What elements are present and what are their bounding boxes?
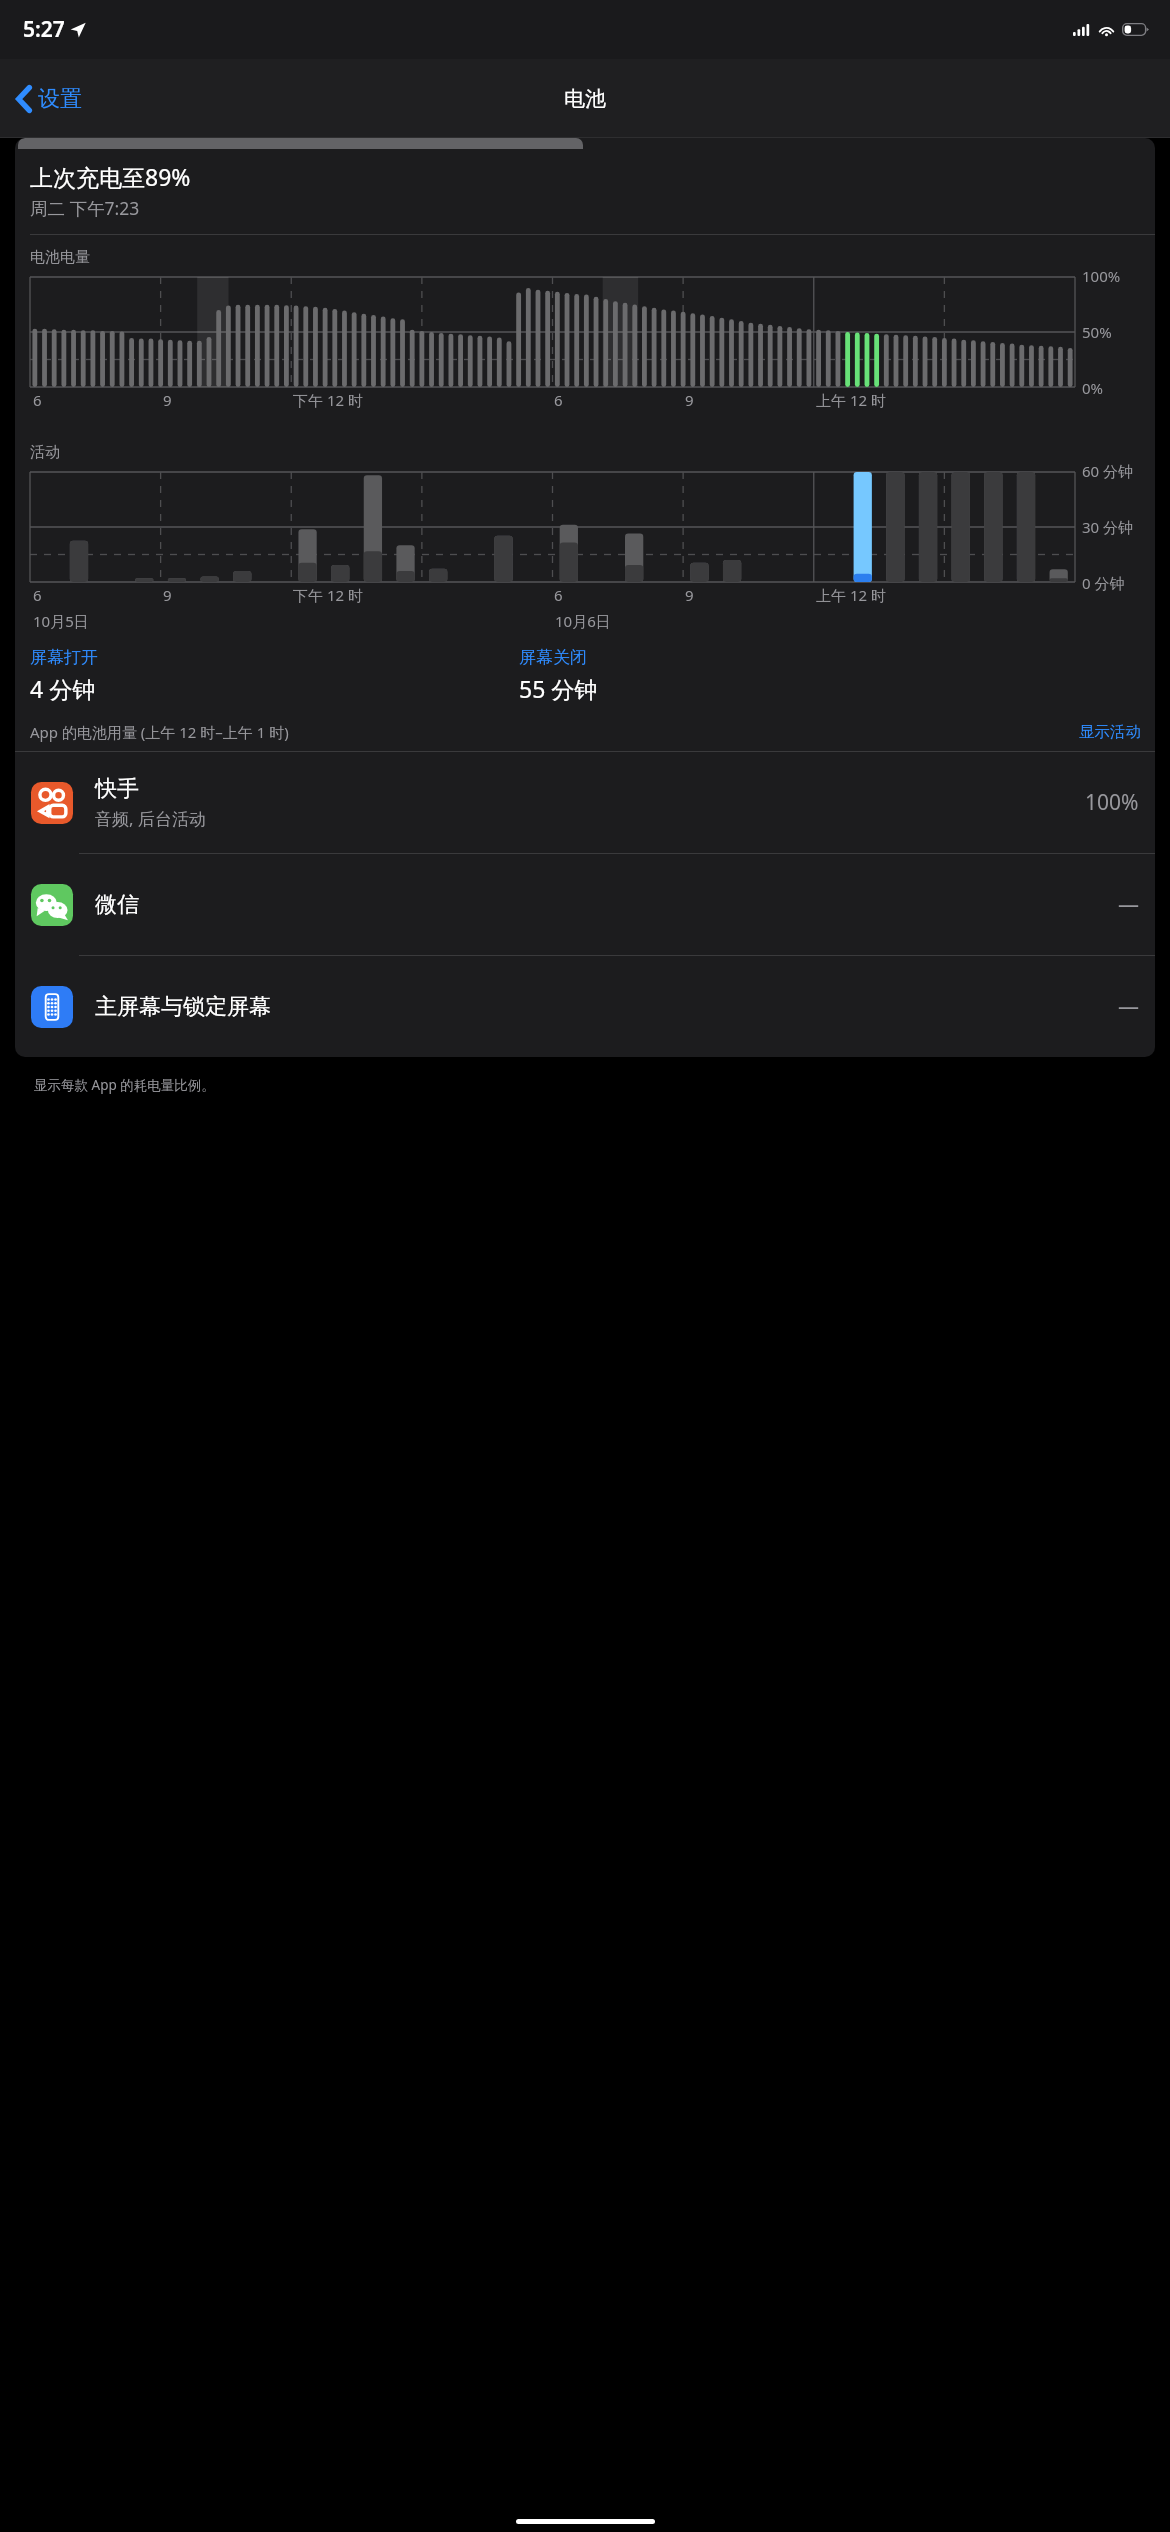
staticText: 10月5日 — [33, 611, 89, 631]
staticText: 50% — [1082, 322, 1112, 342]
staticText: 屏幕打开 — [30, 647, 98, 668]
staticText: 55 分钟 — [519, 673, 598, 704]
staticText: 微信 — [95, 891, 139, 919]
button[interactable] — [18, 138, 583, 149]
button[interactable]: 快手 — [15, 752, 1155, 853]
staticText: 显示每款 App 的耗电量比例。 — [34, 1076, 215, 1094]
staticText: 60 分钟 — [1082, 461, 1134, 481]
staticText: 下午 12 时 — [293, 585, 363, 605]
button[interactable]: 屏幕打开 — [30, 647, 519, 704]
staticText: 6 — [33, 390, 42, 410]
staticText: 9 — [685, 390, 694, 410]
staticText: 30 分钟 — [1082, 517, 1134, 537]
staticText: 下午 12 时 — [293, 390, 363, 410]
button[interactable]: 微信 — [15, 854, 1155, 955]
staticText: 主屏幕与锁定屏幕 — [95, 993, 271, 1021]
staticText: 电池电量 — [30, 248, 90, 267]
staticText: 4 分钟 — [30, 673, 96, 704]
staticText: 设置 — [38, 85, 82, 113]
staticText: 9 — [163, 390, 172, 410]
staticText: — — [1118, 890, 1139, 919]
staticText: 9 — [685, 585, 694, 605]
staticText: 周二 下午7:23 — [30, 196, 140, 220]
button[interactable]: 显示活动 — [1079, 722, 1141, 742]
staticText: 100% — [1085, 788, 1139, 817]
staticText: — — [1118, 992, 1139, 1021]
staticText: 9 — [163, 585, 172, 605]
staticText: 音频, 后台活动 — [95, 807, 206, 830]
staticText: 显示活动 — [1079, 722, 1141, 742]
button[interactable]: 屏幕关闭 — [519, 647, 1155, 704]
staticText: 上次充电至89% — [30, 161, 191, 192]
staticText: 活动 — [30, 443, 60, 462]
button[interactable]: 主屏幕与锁定屏幕 — [15, 956, 1155, 1057]
staticText: 上午 12 时 — [816, 585, 886, 605]
staticText: 0 分钟 — [1082, 573, 1125, 593]
staticText: 100% — [1082, 266, 1121, 286]
staticText: 6 — [33, 585, 42, 605]
staticText: 0% — [1082, 378, 1104, 398]
staticText: 上午 12 时 — [816, 390, 886, 410]
button[interactable]: 设置 — [11, 79, 88, 119]
staticText: 6 — [554, 585, 563, 605]
staticText: App 的电池用量 (上午 12 时–上午 1 时) — [30, 722, 1079, 742]
staticText: 屏幕关闭 — [519, 647, 587, 668]
staticText: 6 — [554, 390, 563, 410]
staticText: 快手 — [95, 775, 139, 803]
staticText: 10月6日 — [555, 611, 611, 631]
staticText: 5:27 — [23, 15, 65, 44]
staticText: 电池 — [564, 86, 606, 112]
